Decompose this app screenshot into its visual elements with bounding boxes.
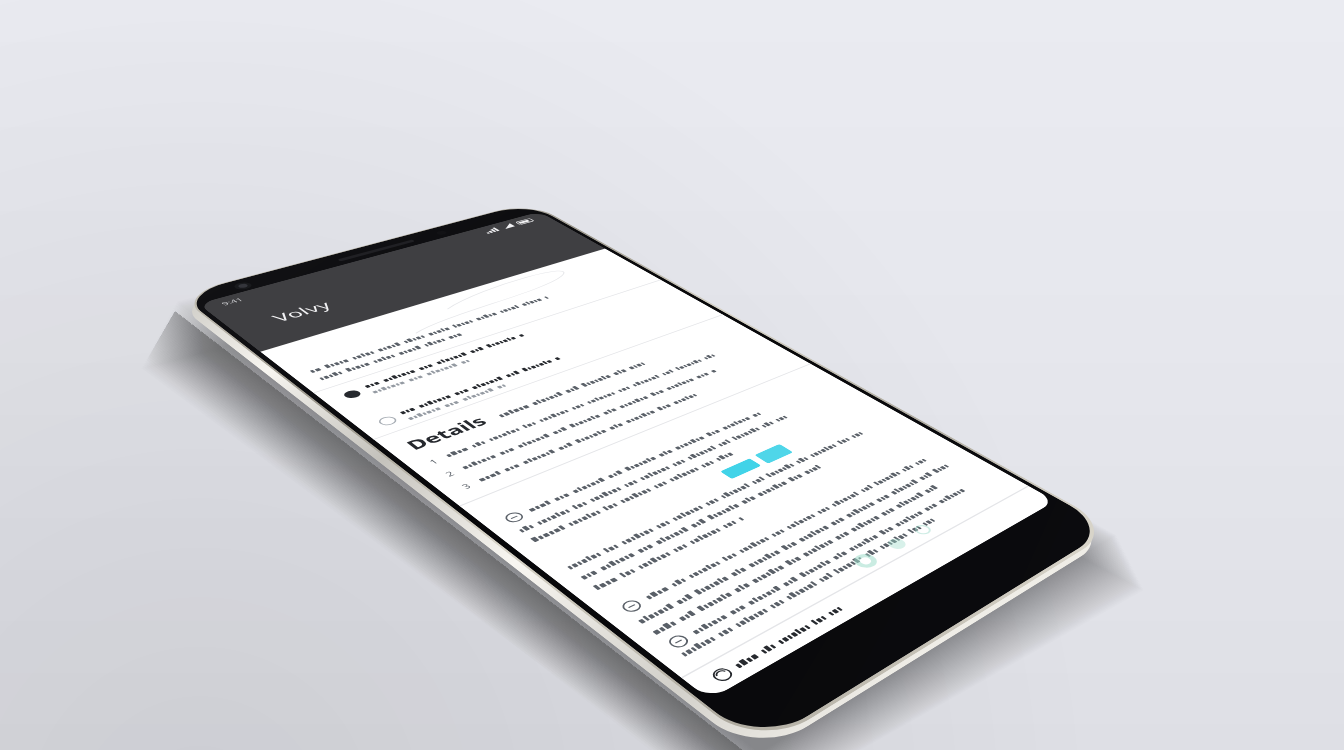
button[interactable]: Volvy [11, 44, 609, 230]
button[interactable]: Selected option [37, 399, 589, 431]
button[interactable]: Option [37, 489, 589, 521]
button[interactable]: 1 [37, 615, 589, 635]
button[interactable]: 2 [37, 652, 589, 672]
